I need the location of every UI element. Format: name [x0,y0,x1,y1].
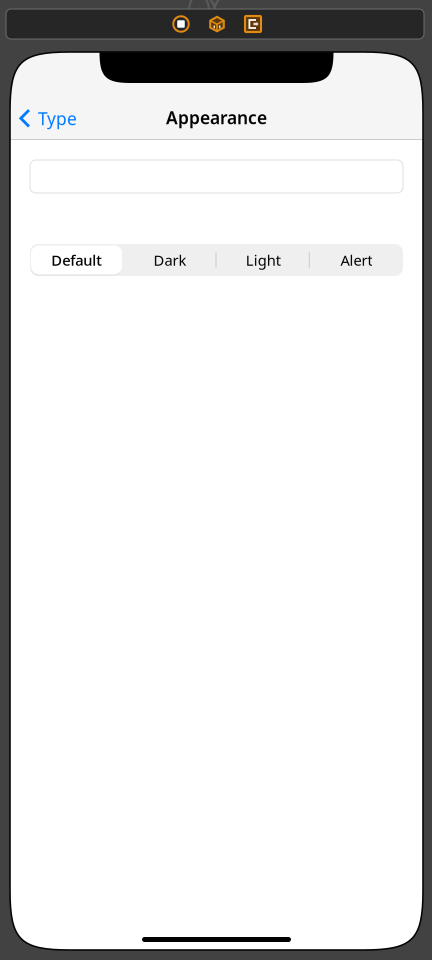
staticText: Alert [340,250,372,270]
button[interactable]: Type [10,101,87,140]
staticText: Dark [153,250,186,270]
button[interactable]: Default [30,244,123,276]
button[interactable]: Dark [123,244,216,276]
button[interactable]: Open in simulator [235,9,271,39]
staticText: Default [51,250,102,270]
button[interactable]: Stop preview [163,9,199,39]
staticText: Type [38,107,77,130]
button[interactable]: Light [216,244,310,276]
staticText: Appearance [166,106,267,129]
button[interactable]: Alert [310,244,403,276]
button[interactable]: Inspect views in 3D [199,9,235,39]
staticText: Light [246,250,281,270]
